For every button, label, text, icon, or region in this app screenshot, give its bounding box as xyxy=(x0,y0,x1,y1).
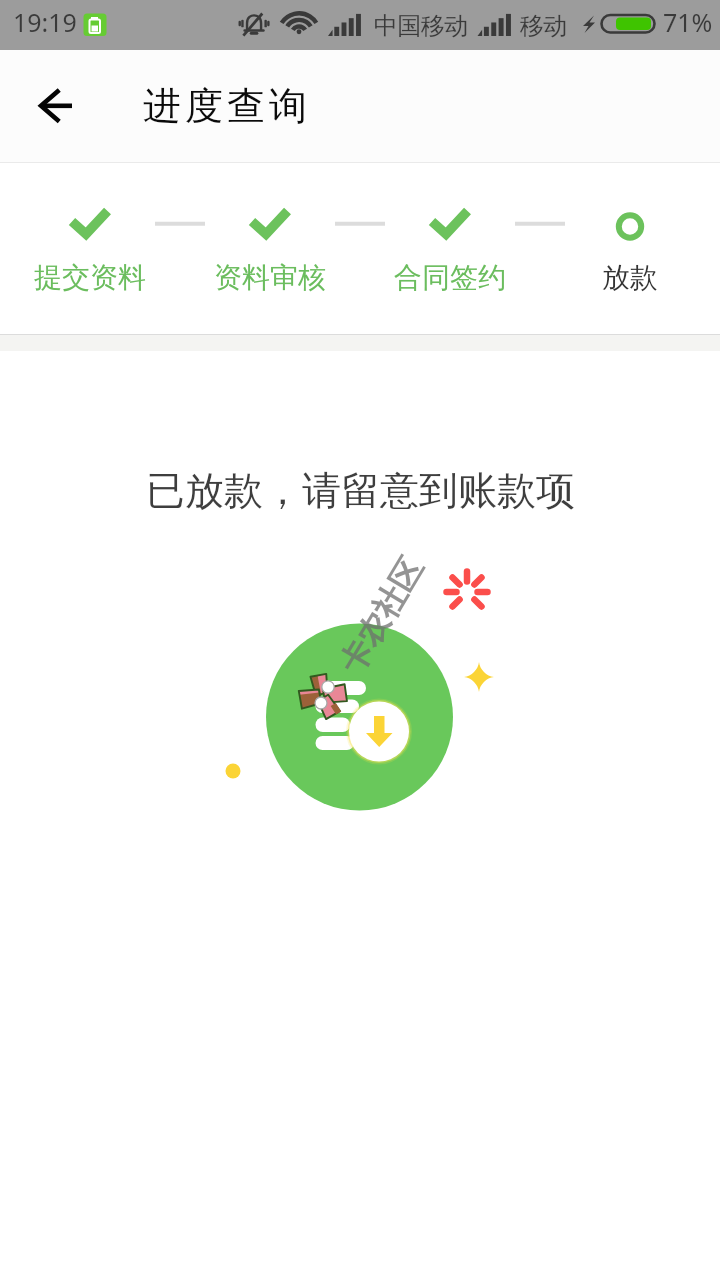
button[interactable]: 提交资料 xyxy=(0,163,180,334)
staticText: 移动 xyxy=(520,11,567,41)
staticText: 卡农社区 xyxy=(331,550,431,681)
staticText: 已放款，请留意到账款项 xyxy=(146,466,575,515)
button[interactable]: 合同签约 xyxy=(360,163,540,334)
staticText: 提交资料 xyxy=(34,260,146,295)
staticText: 71% xyxy=(663,5,713,39)
button[interactable]: Back xyxy=(12,62,100,150)
button[interactable]: 资料审核 xyxy=(180,163,360,334)
staticText: 19:19 xyxy=(13,5,77,39)
button[interactable]: 放款 xyxy=(540,163,720,334)
staticText: 中国移动 xyxy=(374,11,468,41)
staticText: 进度查询 xyxy=(141,82,309,130)
staticText: 放款 xyxy=(602,260,658,295)
staticText: 资料审核 xyxy=(214,260,326,295)
staticText: 合同签约 xyxy=(394,260,506,295)
